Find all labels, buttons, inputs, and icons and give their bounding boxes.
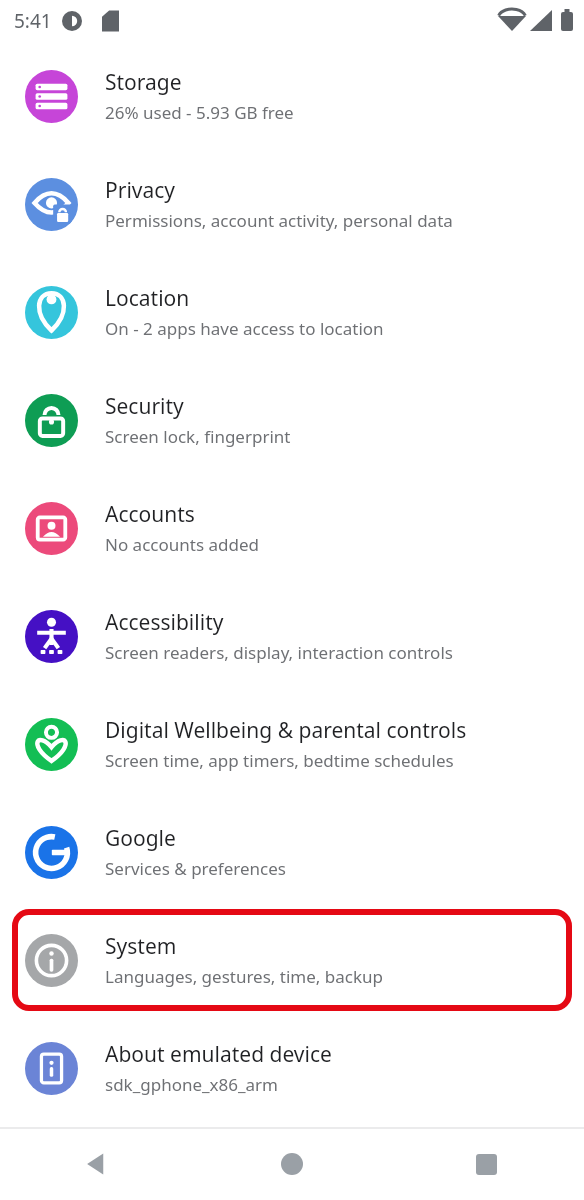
staticText: Languages, gestures, time, backup — [105, 965, 384, 988]
staticText: System — [105, 932, 177, 961]
staticText: No accounts added — [105, 533, 259, 556]
staticText: On - 2 apps have access to location — [105, 317, 384, 340]
button[interactable]: Privacy — [0, 150, 584, 258]
staticText: 5:41 — [14, 8, 52, 34]
button[interactable]: Location — [0, 258, 584, 366]
staticText: Location — [105, 284, 190, 313]
button[interactable]: Security — [0, 366, 584, 474]
staticText: Google — [105, 824, 176, 853]
button[interactable]: Back — [0, 1128, 194, 1200]
staticText: Permissions, account activity, personal … — [105, 209, 453, 232]
staticText: Screen lock, fingerprint — [105, 425, 291, 448]
button[interactable]: Home — [194, 1128, 389, 1200]
staticText: sdk_gphone_x86_arm — [105, 1073, 279, 1096]
button[interactable]: Google — [0, 798, 584, 906]
button[interactable]: About emulated device — [0, 1014, 584, 1122]
staticText: Accounts — [105, 500, 195, 529]
staticText: Screen readers, display, interaction con… — [105, 641, 453, 664]
staticText: Screen time, app timers, bedtime schedul… — [105, 749, 454, 772]
staticText: Services & preferences — [105, 857, 286, 880]
button[interactable]: Accessibility — [0, 582, 584, 690]
staticText: About emulated device — [105, 1040, 332, 1069]
staticText: Digital Wellbeing & parental controls — [105, 716, 467, 745]
staticText: Security — [105, 392, 184, 421]
staticText: Accessibility — [105, 608, 224, 637]
button[interactable]: Storage — [0, 42, 584, 150]
button[interactable]: Accounts — [0, 474, 584, 582]
staticText: Storage — [105, 68, 182, 97]
button[interactable]: Digital Wellbeing & parental controls — [0, 690, 584, 798]
staticText: 26% used - 5.93 GB free — [105, 101, 294, 124]
button[interactable]: Recent apps — [389, 1128, 584, 1200]
button[interactable]: System — [0, 906, 584, 1014]
staticText: Privacy — [105, 176, 176, 205]
